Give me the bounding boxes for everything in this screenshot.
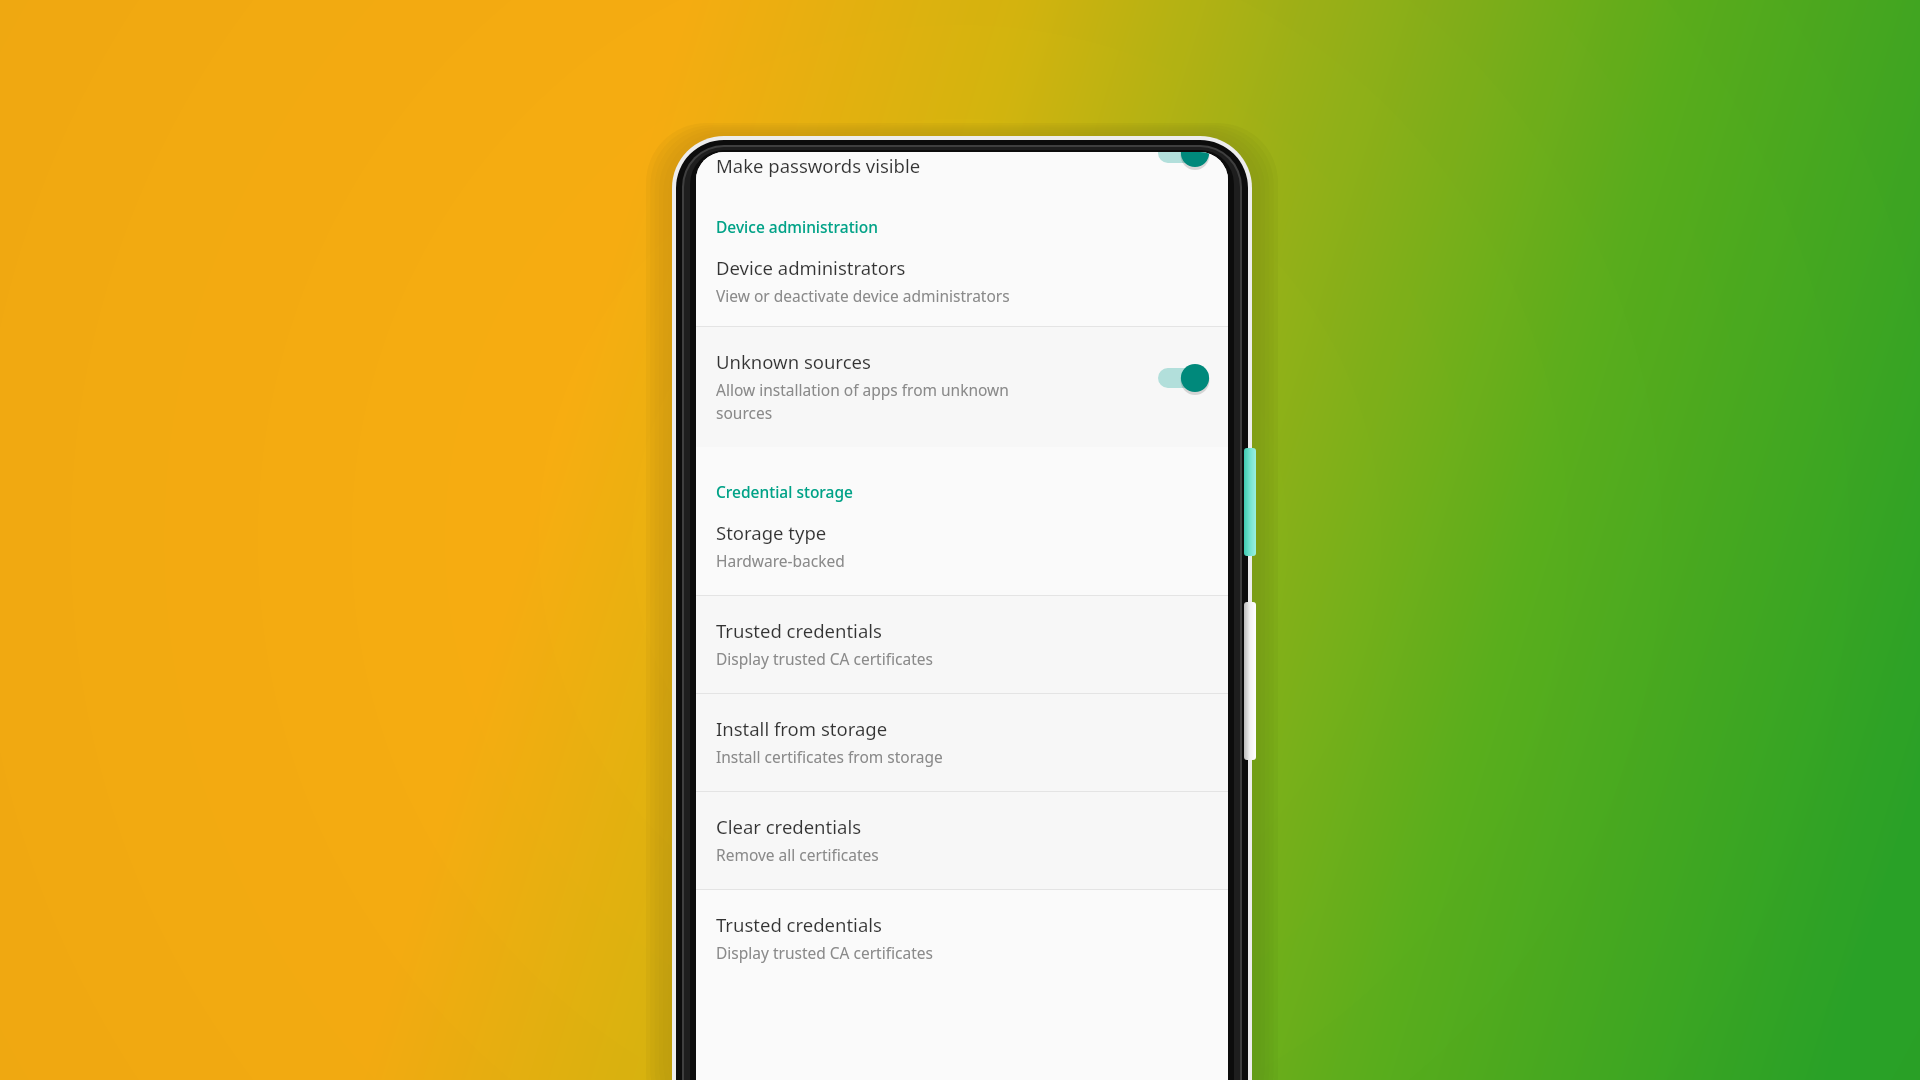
button[interactable]: Power button (1244, 448, 1256, 556)
staticText: Trusted credentials (716, 912, 882, 937)
staticText: Remove all certificates (716, 844, 879, 865)
staticText: Make passwords visible (716, 153, 921, 178)
staticText: Display trusted CA certificates (716, 648, 933, 669)
button[interactable]: Make passwords visible (696, 152, 1228, 186)
staticText: Credential storage (716, 481, 853, 502)
button[interactable]: Install from storage (696, 694, 1228, 791)
button[interactable]: Clear credentials (696, 792, 1228, 889)
staticText: sources (716, 402, 773, 423)
staticText: Device administration (716, 216, 878, 237)
button[interactable]: Trusted credentials (696, 890, 1228, 987)
staticText: Device administrators (716, 255, 906, 280)
staticText: Allow installation of apps from unknown (716, 379, 1009, 400)
staticText: Trusted credentials (716, 618, 882, 643)
staticText: Install from storage (716, 716, 888, 741)
staticText: Install certificates from storage (716, 746, 943, 767)
button[interactable]: Volume buttons (1244, 602, 1256, 760)
button[interactable]: Toggle (1158, 152, 1210, 168)
staticText: View or deactivate device administrators (716, 285, 1010, 306)
staticText: Hardware-backed (716, 550, 845, 571)
button[interactable]: Toggle (1158, 363, 1210, 393)
button[interactable]: Storage type (696, 514, 1228, 595)
staticText: Unknown sources (716, 349, 871, 374)
staticText: Display trusted CA certificates (716, 942, 933, 963)
button[interactable]: Unknown sources (696, 327, 1228, 447)
staticText: Clear credentials (716, 814, 862, 839)
button[interactable]: Trusted credentials (696, 596, 1228, 693)
button[interactable]: Device administrators (696, 249, 1228, 326)
staticText: Storage type (716, 520, 827, 545)
